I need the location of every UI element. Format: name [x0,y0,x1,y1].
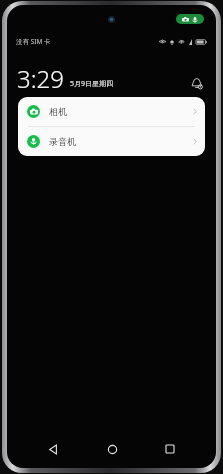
staticText: 3:29 [17,62,64,95]
button[interactable]: Home [99,436,125,462]
staticText: 录音机 [49,136,76,147]
button[interactable]: 录音机 [18,127,205,156]
button[interactable]: Notification settings [187,74,205,92]
button[interactable]: 相机 [18,97,205,126]
button[interactable]: Recent apps [157,436,183,462]
staticText: 相机 [49,106,67,117]
staticText: 5月9日星期四 [70,79,114,89]
staticText: 没有 SIM 卡 [16,37,51,46]
other: Camera and microphone in use [176,14,204,24]
button[interactable]: Back [40,436,66,462]
